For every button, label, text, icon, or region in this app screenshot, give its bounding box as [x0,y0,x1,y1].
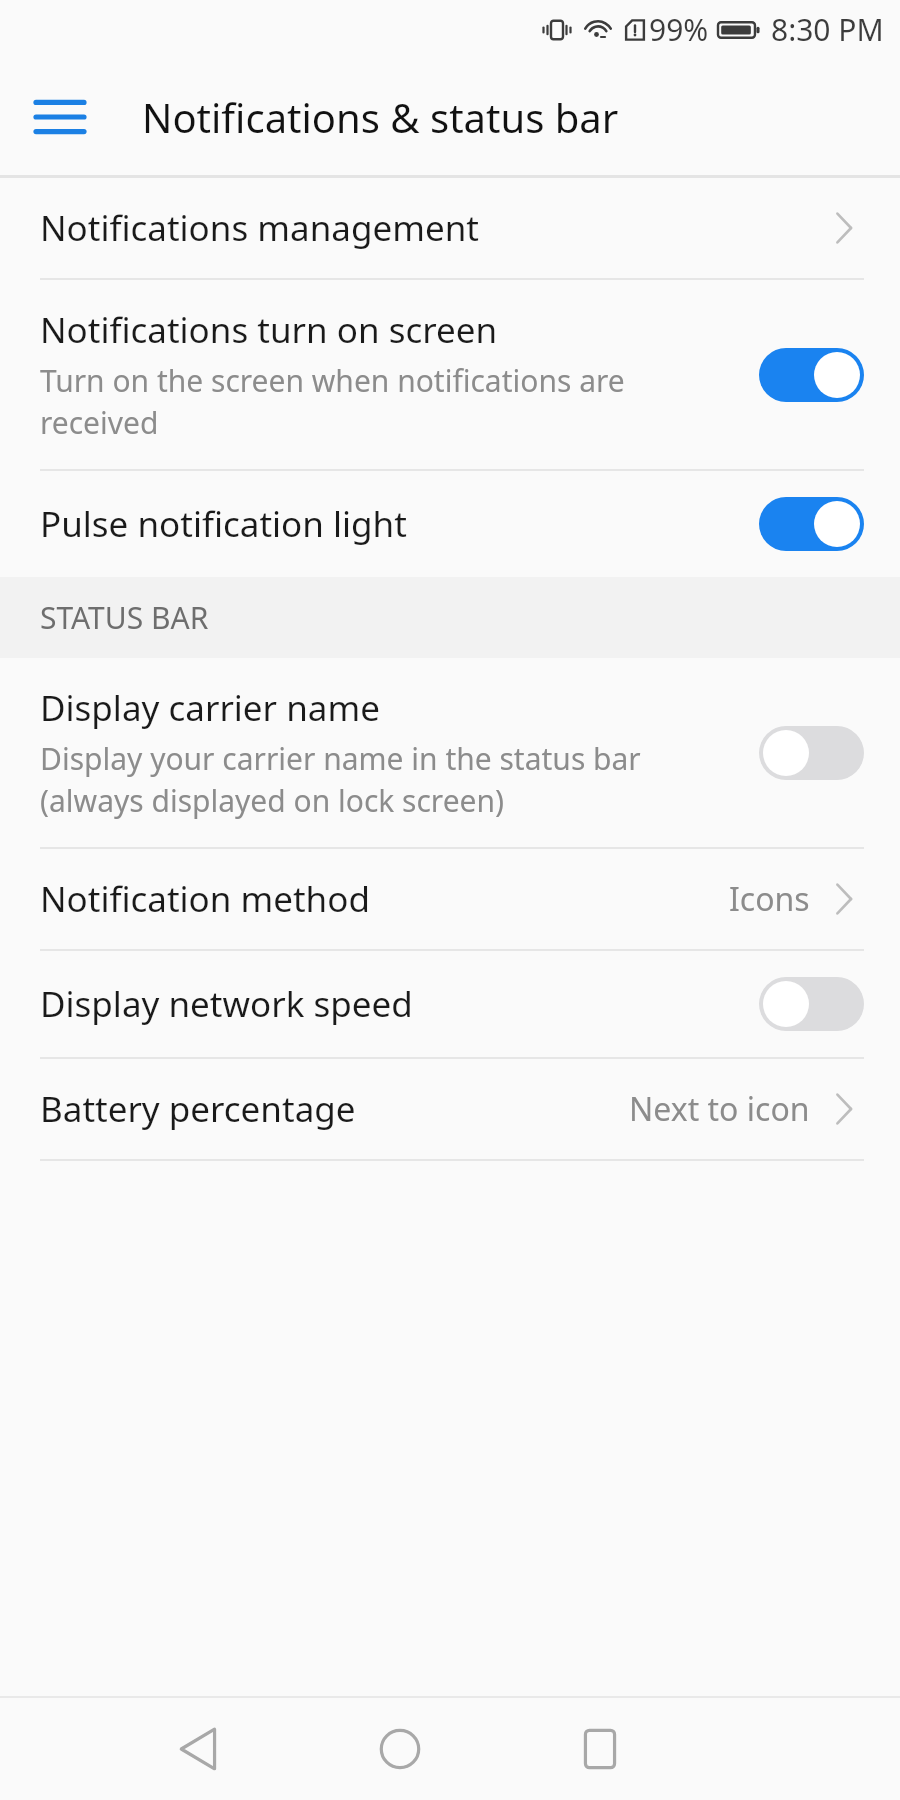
staticText: Display carrier name [40,684,380,732]
button[interactable]: Recents [550,1699,650,1799]
button[interactable]: Home [350,1699,450,1799]
staticText: STATUS BAR [40,597,209,638]
button[interactable]: Notification method [0,849,900,949]
staticText: Pulse notification light [40,500,407,548]
button[interactable]: Toggle on [759,497,864,551]
button[interactable]: Pulse notification light [0,471,900,577]
other: Open [824,205,864,251]
staticText: Next to icon [629,1087,810,1131]
other: Open [824,1086,864,1132]
staticText: 8:30 PM [771,9,884,50]
staticText: Battery percentage [40,1085,356,1133]
button[interactable]: Toggle off [759,726,864,780]
staticText: Notifications turn on screen [40,306,498,354]
other: Open [824,876,864,922]
staticText: Display your carrier name in the status … [40,738,641,821]
button[interactable]: Battery percentage [0,1059,900,1159]
button[interactable]: Toggle off [759,977,864,1031]
button[interactable]: Back [150,1699,250,1799]
staticText: Display network speed [40,980,413,1028]
button[interactable]: Toggle on [759,348,864,402]
button[interactable]: Notifications management [0,178,900,278]
staticText: Turn on the screen when notifications ar… [40,360,625,443]
staticText: Notification method [40,875,370,923]
button[interactable]: Display carrier name [0,658,900,847]
staticText: Notifications & status bar [142,90,619,144]
button[interactable]: Display network speed [0,951,900,1057]
staticText: Notifications management [40,204,479,252]
staticText: 99% [649,9,709,50]
staticText: Icons [729,877,810,921]
button[interactable]: Menu [24,81,96,153]
button[interactable]: Notifications turn on screen [0,280,900,469]
